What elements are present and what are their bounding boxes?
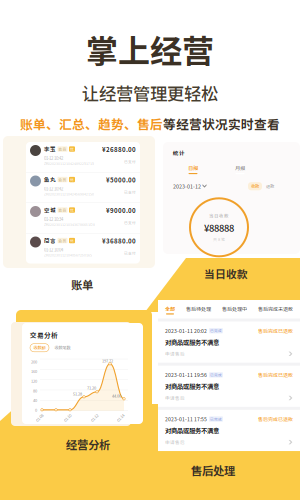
staticText: ¥26880.00 [102,145,136,154]
staticText: 对商品或服务不满意 [165,337,219,346]
staticText: 申请售后 [165,350,185,357]
staticText: 已完成 [210,372,222,378]
staticText: 等经营状况实时查看 [163,114,280,133]
staticText: 01-12 10:42 [44,186,63,192]
staticText: ¥88888 [204,221,234,234]
staticText: 收款额 [33,345,45,351]
staticText: ZK020230112104056725016S [44,252,92,257]
staticText: 01-12 10:34 [44,216,63,222]
staticText: 已支付 [124,189,136,195]
staticText: ZK020230112104248922S171S [44,161,94,166]
staticText: 账单 [71,276,93,292]
staticText: 已支付 [124,159,136,164]
staticText: 会员 [58,146,66,152]
staticText: 对商品或服务不满意 [165,381,219,391]
staticText: 71.20 [87,385,96,391]
staticText: 200 [31,359,37,365]
staticText: 经营分析 [66,436,110,452]
staticText: 售后完成已退款 [258,327,293,334]
staticText: 收款笔数 [54,345,70,351]
staticText: 简言 [44,236,56,245]
staticText: 01-08 [35,415,44,421]
staticText: 当日收款 [209,212,229,219]
staticText: ZK020230112103436786651O8 [44,222,95,227]
staticText: 160 [31,368,37,374]
staticText: 收款 [251,183,259,189]
staticText: 日报 [188,164,198,172]
staticText: 对商品或服务不满意 [165,426,219,435]
staticText: 44.00 [112,393,121,399]
staticText: 李玉 [44,145,56,153]
staticText: 当日收款 [204,266,248,281]
staticText: 80 [33,388,37,394]
staticText: 售后完成已退款 [258,371,293,378]
staticText: 申请售后 [165,395,185,401]
staticText: 优 [70,146,74,152]
staticText: 交易分析 [30,330,58,340]
staticText: 账单、汇总、趋势、售后 [20,114,163,133]
staticText: 01-14 [116,415,125,421]
staticText: 申请售后 [165,439,185,446]
staticText: ¥36880.00 [102,236,136,245]
staticText: 已完成 [210,328,222,333]
staticText: 已完成 [210,416,222,422]
staticText: 01-12 10:42 [44,155,63,161]
staticText: 01-12 [90,415,99,421]
staticText: 售后完成已退款 [258,415,293,423]
staticText: 优 [70,207,74,213]
staticText: 售后处理中 [222,305,247,312]
staticText: 已支付 [124,220,136,225]
staticText: 2023-01-11 19:56 [165,371,207,378]
staticText: 2023-01-11 20:02 [165,327,207,334]
staticText: 120 [31,378,37,384]
staticText: 鱼丸 [44,175,56,184]
staticText: 2023-01-11 17:55 [165,415,207,423]
staticText: 退款 [266,183,274,189]
staticText: 会员 [58,238,66,243]
staticText: ¥5000.00 [106,175,136,184]
staticText: 优 [70,177,74,182]
staticText: 空城 [44,206,56,214]
staticText: 共 8 笔 [213,236,225,242]
staticText: 售后完成未退款 [258,305,293,312]
staticText: 2023-01-12 [173,182,201,190]
staticText: 40 [33,397,37,403]
staticText: ¥9000.00 [106,206,136,215]
staticText: 掌上经营 [86,26,214,72]
staticText: 197.72 [102,358,113,364]
staticText: 售后处理 [191,462,235,478]
staticText: ZK020230112104245698421S0 [44,191,94,196]
staticText: 统计 [173,149,185,157]
staticText: 让经营管理更轻松 [82,80,218,105]
staticText: 会员 [58,177,66,182]
staticText: 月报 [235,164,245,172]
staticText: 0 [35,407,37,413]
staticText: 51.28 [73,391,82,397]
staticText: 01-10 [63,415,72,421]
staticText: 优 [70,238,74,243]
staticText: 全部 [165,305,175,312]
staticText: 售后待处理 [186,305,211,312]
staticText: 会员 [58,207,66,213]
staticText: 01-12 10:04 [44,247,63,253]
staticText: 已支付 [124,250,136,256]
